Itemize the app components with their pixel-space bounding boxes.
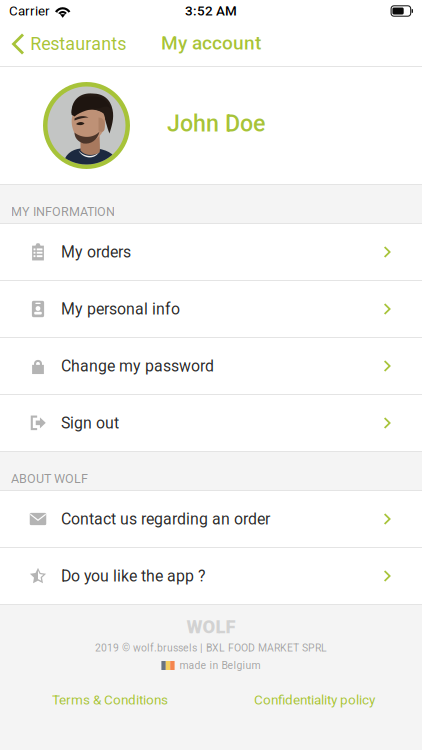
staticText: 2019 © wolf.brussels | BXL FOOD MARKET S…: [95, 642, 327, 654]
staticText: Restaurants: [30, 33, 126, 54]
staticText: Terms & Conditions: [52, 692, 168, 708]
staticText: Carrier: [9, 3, 50, 19]
staticText: My personal info: [61, 300, 180, 318]
staticText: WOLF: [186, 616, 235, 638]
button[interactable]: Restaurants: [0, 22, 134, 66]
button[interactable]: Terms & Conditions: [52, 693, 168, 707]
button[interactable]: Contact us regarding an order: [0, 491, 422, 547]
staticText: Contact us regarding an order: [61, 510, 270, 528]
button[interactable]: My personal info: [0, 281, 422, 337]
staticText: Change my password: [61, 357, 214, 375]
button[interactable]: Sign out: [0, 395, 422, 451]
button[interactable]: Change my password: [0, 338, 422, 394]
staticText: Do you like the app ?: [61, 567, 206, 585]
staticText: John Doe: [167, 110, 265, 137]
staticText: 3:52 AM: [185, 3, 237, 19]
staticText: made in Belgium: [180, 659, 261, 672]
staticText: Sign out: [61, 414, 119, 432]
staticText: ABOUT WOLF: [11, 471, 88, 486]
staticText: My orders: [61, 243, 131, 261]
button[interactable]: Do you like the app ?: [0, 548, 422, 604]
staticText: My account: [161, 32, 261, 54]
staticText: MY INFORMATION: [11, 204, 115, 219]
button[interactable]: Confidentiality policy: [254, 693, 375, 707]
staticText: Confidentiality policy: [254, 692, 375, 708]
button[interactable]: My orders: [0, 224, 422, 280]
